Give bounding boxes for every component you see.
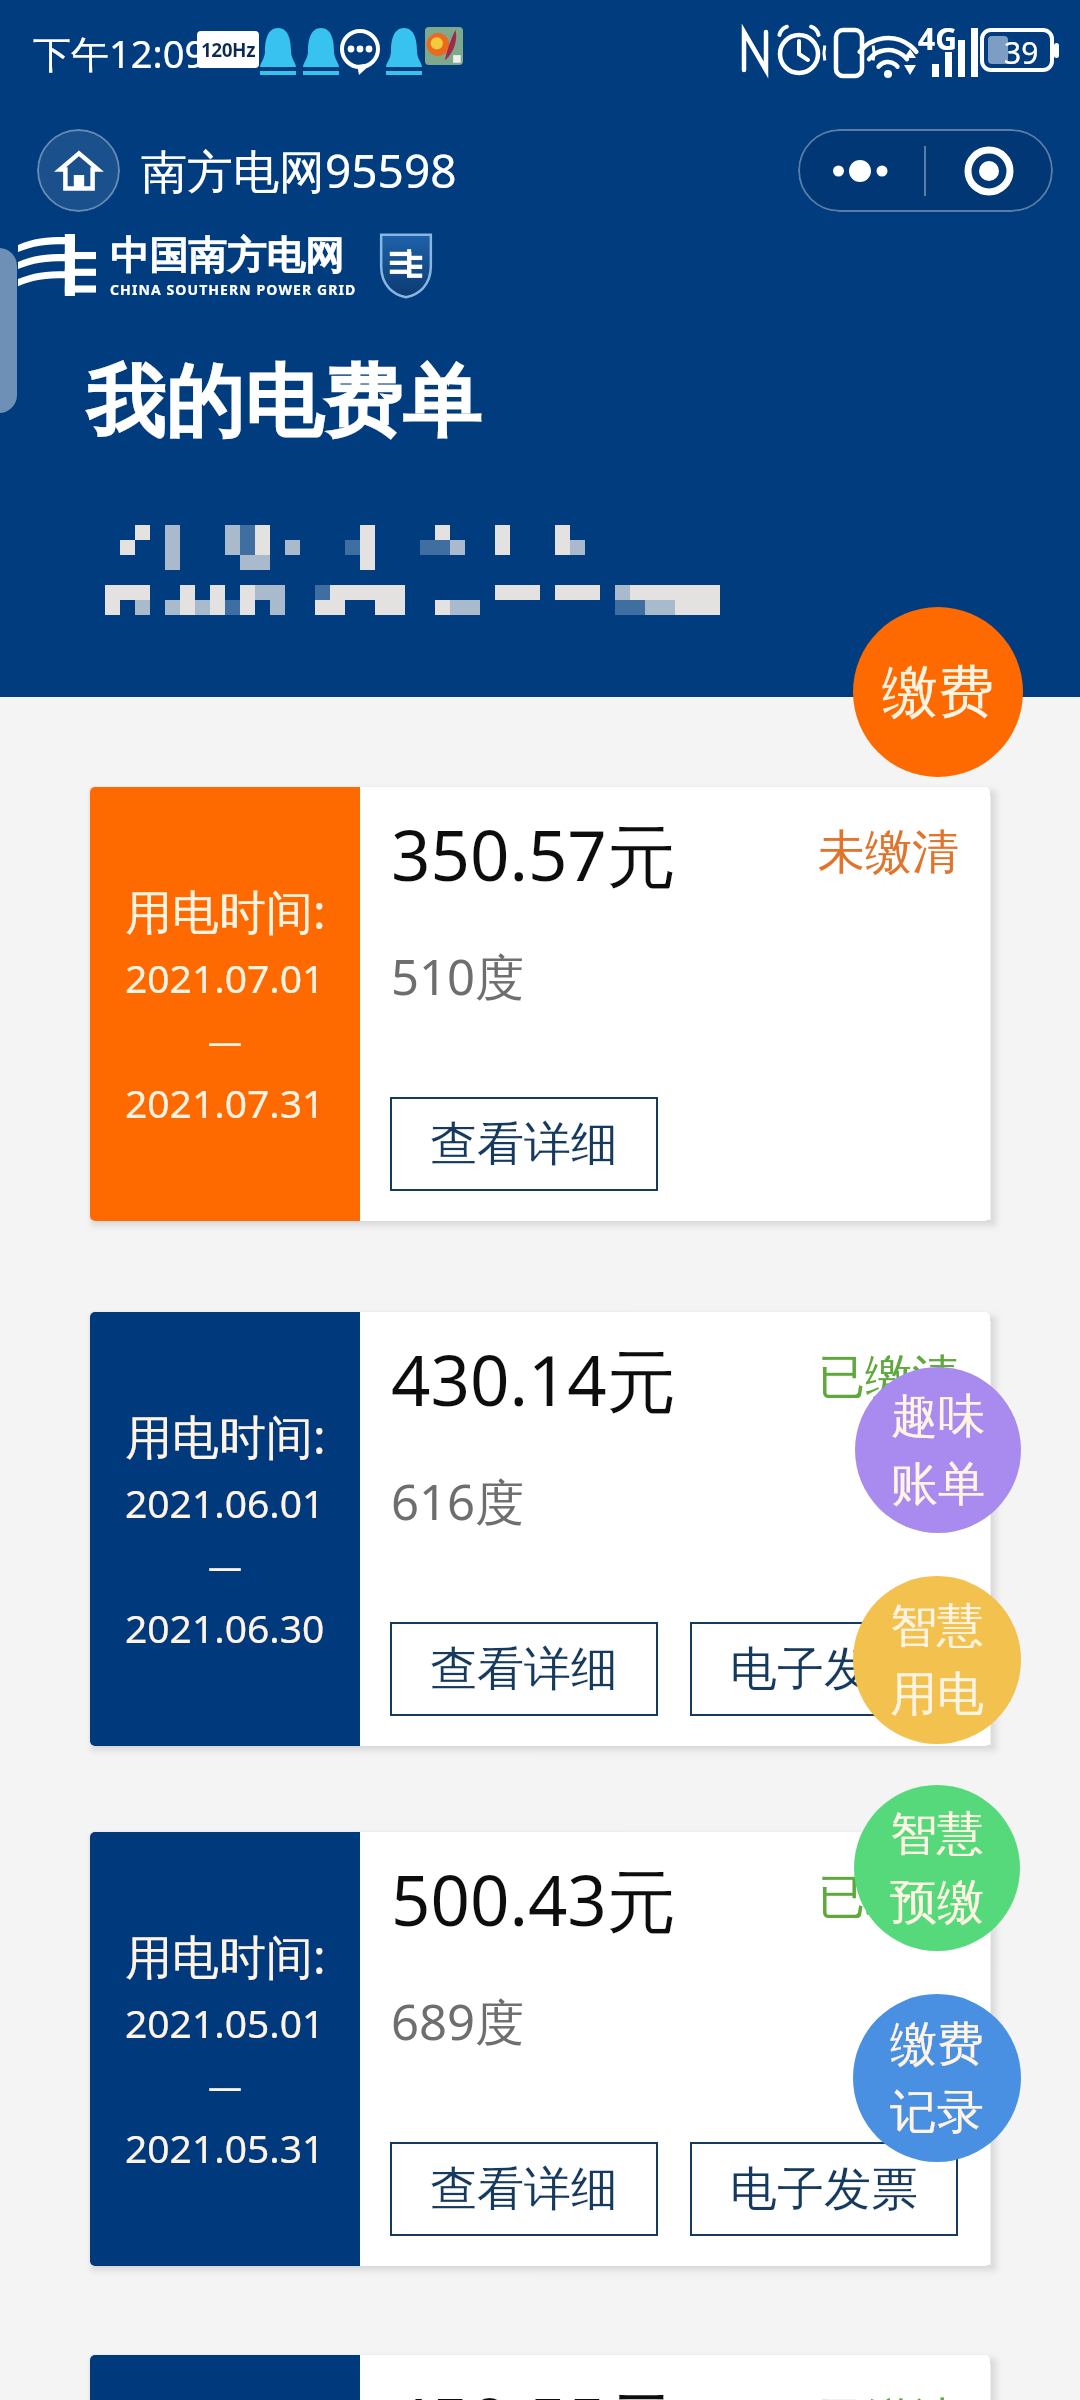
staticText: 已缴清 xyxy=(818,1868,959,1927)
button[interactable]: 电子发票 xyxy=(690,2142,958,2236)
staticText: 2021.06.01 xyxy=(125,1476,325,1529)
staticText: 已缴清 xyxy=(818,1348,959,1407)
staticText: — xyxy=(208,2063,242,2109)
staticText: 39 xyxy=(1004,32,1039,73)
staticText: 我的电费单 xyxy=(86,353,481,453)
staticText: 500.43元 xyxy=(391,1852,676,1946)
staticText: 电子发票 xyxy=(730,1640,918,1699)
staticText: 用电时间: xyxy=(125,1404,326,1468)
staticText: 预缴 xyxy=(890,1873,984,1932)
button[interactable]: 查看详细 xyxy=(390,1622,658,1716)
staticText: 查看详细 xyxy=(430,1640,618,1699)
staticText: 用电时间: xyxy=(125,1924,326,1988)
button[interactable]: Home xyxy=(37,129,120,212)
button[interactable]: Close xyxy=(926,129,1052,212)
staticText: 电子发票 xyxy=(730,2160,918,2219)
staticText: 缴费 xyxy=(890,2015,984,2074)
staticText: 616度 xyxy=(391,1468,525,1535)
button[interactable]: 趣味账单 xyxy=(855,1367,1021,1533)
staticText: 450.55元 xyxy=(391,2375,676,2400)
staticText: 350.57元 xyxy=(391,807,676,901)
staticText: 510度 xyxy=(391,943,525,1010)
button[interactable]: 用电时间: xyxy=(90,2355,990,2400)
staticText: 账单 xyxy=(891,1455,985,1514)
staticText: CHINA SOUTHERN POWER GRID xyxy=(110,280,357,299)
staticText: 未缴清 xyxy=(818,823,959,882)
staticText: 查看详细 xyxy=(430,2160,618,2219)
staticText: 120Hz xyxy=(201,37,256,63)
staticText: 中国南方电网 xyxy=(110,231,344,280)
staticText: 用电时间: xyxy=(125,879,326,943)
staticText: 已缴清 xyxy=(818,2391,959,2400)
button[interactable]: 用电时间: xyxy=(90,787,990,1221)
staticText: 2021.05.01 xyxy=(125,1996,325,2049)
staticText: 689度 xyxy=(391,1988,525,2055)
button[interactable]: 电子发票 xyxy=(690,1622,958,1716)
staticText: 智慧 xyxy=(890,1805,984,1864)
staticText: 趣味 xyxy=(891,1387,985,1446)
button[interactable]: More options xyxy=(798,129,924,212)
staticText: 4G xyxy=(918,18,957,59)
button[interactable]: 缴费记录 xyxy=(853,1994,1021,2162)
staticText: 2021.06.30 xyxy=(125,1601,325,1654)
staticText: 430.14元 xyxy=(391,1332,676,1426)
button[interactable]: 智慧预缴 xyxy=(854,1785,1020,1951)
staticText: — xyxy=(208,1543,242,1589)
staticText: 记录 xyxy=(890,2083,984,2142)
staticText: 下午12:09 xyxy=(33,27,207,79)
staticText: 缴费 xyxy=(882,657,994,728)
staticText: 2021.05.31 xyxy=(125,2121,325,2174)
button[interactable]: 智慧用电 xyxy=(853,1576,1021,1744)
staticText: 用电 xyxy=(890,1665,984,1724)
staticText: 查看详细 xyxy=(430,1115,618,1174)
staticText: 智慧 xyxy=(890,1597,984,1656)
staticText: — xyxy=(208,1018,242,1064)
staticText: 南方电网95598 xyxy=(141,139,457,202)
button[interactable]: 用电时间: xyxy=(90,1312,990,1746)
staticText: 2021.07.31 xyxy=(125,1076,325,1129)
button[interactable]: 查看详细 xyxy=(390,2142,658,2236)
button[interactable]: 缴费 xyxy=(853,607,1023,777)
staticText: 2021.07.01 xyxy=(125,951,325,1004)
button[interactable]: 用电时间: xyxy=(90,1832,990,2266)
button[interactable]: 查看详细 xyxy=(390,1097,658,1191)
